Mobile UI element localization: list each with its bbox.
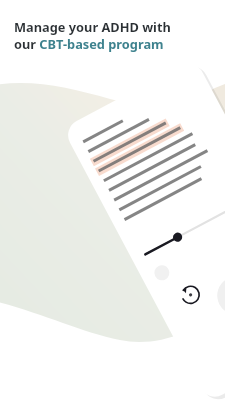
button[interactable]: Manage your ADHD with bbox=[14, 18, 171, 52]
other: Audio player preview bbox=[0, 0, 225, 400]
staticText: Manage your ADHD with bbox=[14, 18, 171, 35]
staticText: our CBT-based program bbox=[14, 35, 164, 52]
